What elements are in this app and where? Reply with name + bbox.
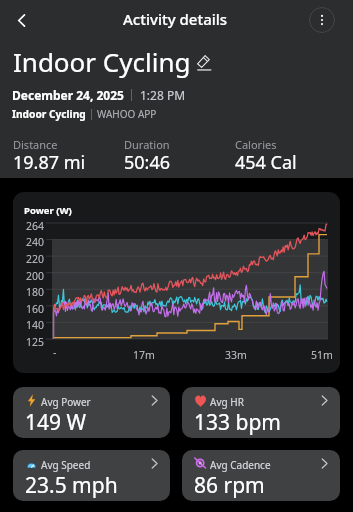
button[interactable]: Avg Cadence xyxy=(182,450,340,501)
staticText: 17m xyxy=(133,348,155,362)
staticText: Duration xyxy=(124,137,170,152)
staticText: 86 rpm xyxy=(194,471,265,500)
staticText: Activity details xyxy=(123,9,228,29)
staticText: 133 bpm xyxy=(194,408,281,437)
staticText: 160 xyxy=(13,302,44,316)
staticText: 200 xyxy=(13,269,44,283)
staticText: Indoor Cycling xyxy=(13,44,191,79)
staticText: WAHOO APP xyxy=(97,107,157,121)
staticText: 51m xyxy=(311,348,333,362)
staticText: Indoor Cycling xyxy=(12,107,86,121)
staticText: 149 W xyxy=(25,408,87,437)
staticText: Avg Speed xyxy=(41,458,91,472)
staticText: 19.87 mi xyxy=(13,150,86,175)
staticText: 454 Cal xyxy=(235,150,297,175)
staticText: 140 xyxy=(13,318,44,332)
staticText: Avg HR xyxy=(210,395,244,409)
staticText: 125 xyxy=(13,335,44,349)
staticText: Calories xyxy=(235,137,277,152)
staticText: 180 xyxy=(13,285,44,299)
staticText: 23.5 mph xyxy=(25,471,118,500)
button[interactable]: Power (W) xyxy=(13,192,340,373)
staticText: Avg Power xyxy=(41,395,91,409)
staticText: Distance xyxy=(13,137,58,152)
staticText: 220 xyxy=(13,252,44,266)
staticText: December 24, 2025 xyxy=(12,87,124,103)
staticText: 240 xyxy=(13,235,44,249)
staticText: 264 xyxy=(13,219,44,233)
button[interactable]: Avg Speed xyxy=(13,450,170,501)
button[interactable]: More options xyxy=(309,7,335,33)
button[interactable]: Avg Power xyxy=(13,387,170,438)
button[interactable]: Edit activity name xyxy=(196,53,212,69)
staticText: Power (W) xyxy=(24,204,72,217)
staticText: 50:46 xyxy=(124,150,171,175)
button[interactable]: Back xyxy=(4,3,38,37)
button[interactable]: Avg HR xyxy=(182,387,340,438)
staticText: - xyxy=(53,345,57,359)
staticText: 1:28 PM xyxy=(140,87,186,103)
staticText: Avg Cadence xyxy=(210,458,271,472)
staticText: 33m xyxy=(225,348,247,362)
